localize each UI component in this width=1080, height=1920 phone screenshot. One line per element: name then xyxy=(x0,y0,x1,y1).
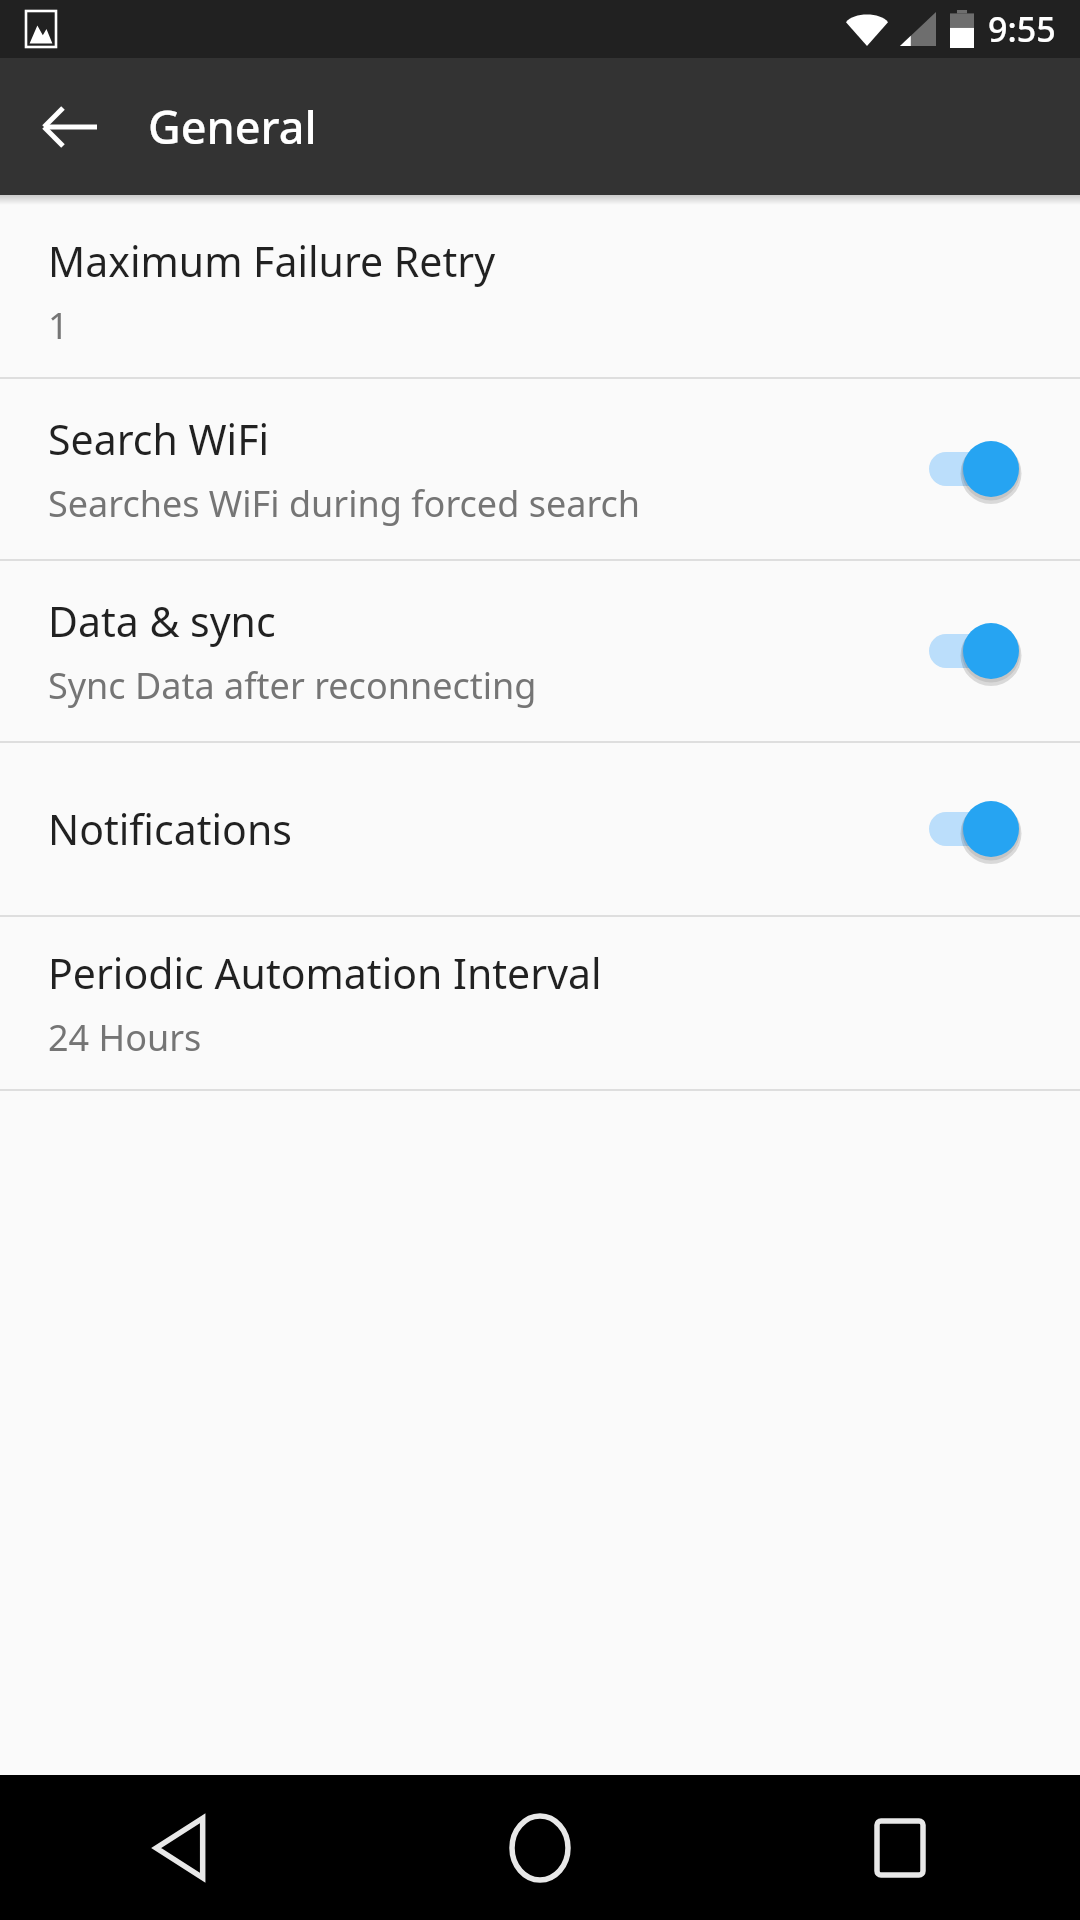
button[interactable]: Back xyxy=(0,1775,360,1920)
button[interactable]: Back xyxy=(26,83,114,171)
button[interactable]: Toggle xyxy=(914,615,1032,687)
staticText: Searches WiFi during forced search xyxy=(48,479,641,528)
button[interactable]: Periodic Automation Interval xyxy=(0,917,1080,1089)
staticText: 1 xyxy=(48,301,69,350)
button[interactable]: Search WiFi xyxy=(0,379,1080,559)
staticText: Maximum Failure Retry xyxy=(48,233,496,289)
staticText: Data & sync xyxy=(48,593,276,649)
button[interactable]: Recent apps xyxy=(720,1775,1080,1920)
staticText: 24 Hours xyxy=(48,1013,202,1062)
staticText: Search WiFi xyxy=(48,411,269,467)
button[interactable]: Maximum Failure Retry xyxy=(0,205,1080,377)
staticText: 9:55 xyxy=(988,6,1056,52)
staticText: Notifications xyxy=(48,801,292,857)
button[interactable]: Notifications xyxy=(0,743,1080,915)
staticText: Periodic Automation Interval xyxy=(48,945,602,1001)
staticText: General xyxy=(148,96,317,157)
button[interactable]: Home xyxy=(360,1775,720,1920)
staticText: Sync Data after reconnecting xyxy=(48,661,537,710)
button[interactable]: Toggle xyxy=(914,433,1032,505)
button[interactable]: Data & sync xyxy=(0,561,1080,741)
button[interactable]: Toggle xyxy=(914,793,1032,865)
